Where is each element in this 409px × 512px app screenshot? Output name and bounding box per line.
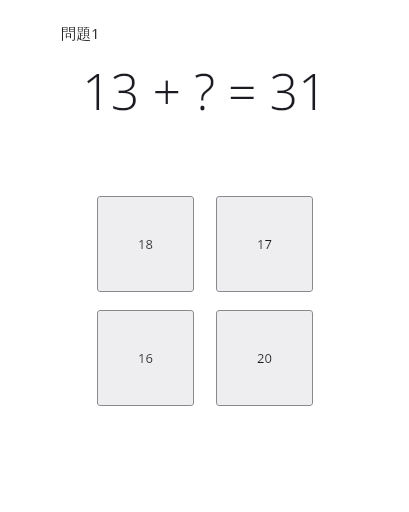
staticText: 17 (257, 235, 272, 253)
staticText: 18 (138, 235, 153, 253)
staticText: 16 (138, 349, 153, 367)
staticText: 13 + ? = 31 (82, 57, 327, 125)
button[interactable]: 18 (97, 196, 194, 292)
button[interactable]: 17 (216, 196, 313, 292)
staticText: 20 (257, 349, 272, 367)
button[interactable]: 16 (97, 310, 194, 406)
staticText: 問題1 (61, 23, 100, 43)
button[interactable]: 20 (216, 310, 313, 406)
